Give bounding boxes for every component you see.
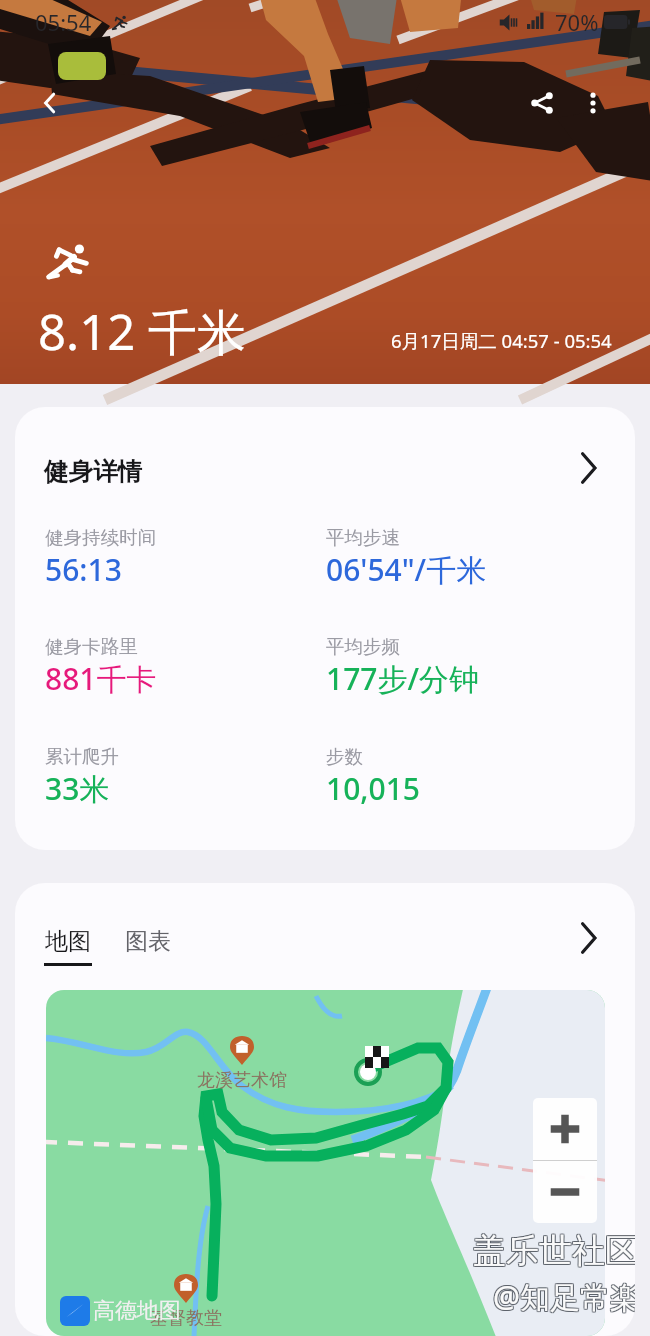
button[interactable]: More options <box>569 79 617 127</box>
staticText: 盖乐世社区 <box>472 1230 635 1272</box>
staticText: 盖乐世社区 <box>473 1229 635 1271</box>
staticText: @知足常楽 <box>492 1276 635 1317</box>
staticText: 33米 <box>45 768 110 809</box>
staticText: 图表 <box>125 927 171 956</box>
staticText: 健身持续时间 <box>45 526 156 549</box>
staticText: 06'54"/千米 <box>326 549 487 590</box>
staticText: 177步/分钟 <box>326 658 480 699</box>
staticText: @知足常楽 <box>493 1275 635 1316</box>
staticText: 05:54 <box>35 7 92 37</box>
staticText: 盖乐世社区 <box>472 1231 635 1273</box>
staticText: 平均步速 <box>326 526 400 549</box>
button[interactable]: Zoom in <box>533 1098 597 1160</box>
staticText: @知足常楽 <box>492 1275 635 1316</box>
staticText: 盖乐世社区 <box>472 1229 635 1271</box>
staticText: @知足常楽 <box>493 1276 635 1317</box>
staticText: @知足常楽 <box>493 1277 635 1318</box>
button[interactable]: 图表 <box>125 927 171 956</box>
staticText: @知足常楽 <box>494 1275 635 1316</box>
staticText: 70% <box>555 7 599 37</box>
button[interactable]: 健身详情 <box>15 407 635 517</box>
staticText: 10,015 <box>326 768 420 809</box>
staticText: 盖乐世社区 <box>474 1231 635 1273</box>
button[interactable]: Open map <box>579 921 599 955</box>
staticText: 881千卡 <box>45 658 157 699</box>
staticText: 56:13 <box>45 549 122 590</box>
staticText: @知足常楽 <box>494 1276 635 1317</box>
staticText: 平均步频 <box>326 635 400 658</box>
staticText: 盖乐世社区 <box>473 1230 635 1272</box>
staticText: 6月17日周二 04:57 - 05:54 <box>391 328 612 353</box>
staticText: 盖乐世社区 <box>474 1230 635 1272</box>
staticText: 累计爬升 <box>45 745 119 768</box>
staticText: 基督教堂 <box>150 1307 222 1330</box>
staticText: 步数 <box>326 745 363 768</box>
button[interactable]: Zoom out <box>533 1161 597 1223</box>
staticText: @知足常楽 <box>494 1277 635 1318</box>
staticText: 盖乐世社区 <box>473 1231 635 1273</box>
staticText: @知足常楽 <box>492 1277 635 1318</box>
button[interactable]: Back <box>26 79 74 127</box>
staticText: 盖乐世社区 <box>474 1229 635 1271</box>
staticText: 健身卡路里 <box>45 635 138 658</box>
staticText: 地图 <box>45 927 91 956</box>
staticText: 龙溪艺术馆 <box>197 1069 287 1092</box>
button[interactable]: 地图 <box>44 927 92 966</box>
staticText: 健身详情 <box>44 456 142 487</box>
button[interactable]: Share <box>518 79 566 127</box>
staticText: 8.12 千米 <box>38 298 246 365</box>
staticText: 高德地图 <box>93 1297 181 1325</box>
